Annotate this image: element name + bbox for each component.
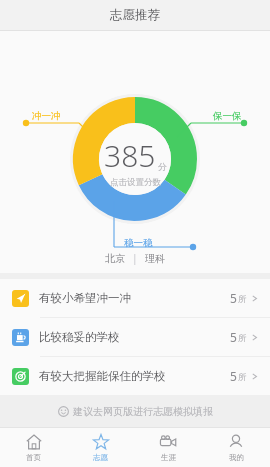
staticText: 有较小希望冲一冲 [39,291,131,305]
button[interactable]: 有较小希望冲一冲 [0,279,270,317]
button[interactable]: 我的 [202,428,270,467]
staticText: 北京 [105,252,125,265]
staticText: 点击设置分数 [110,177,161,188]
staticText: 5 [230,329,237,345]
staticText: 我的 [229,453,244,462]
staticText: 稳一稳 [124,237,153,249]
button[interactable]: 生涯 [134,428,202,467]
staticText: 理科 [145,252,165,265]
staticText: 比较稳妥的学校 [39,330,120,344]
staticText: 志愿推荐 [110,7,160,23]
staticText: 生涯 [161,453,176,462]
staticText: 385 [104,135,156,176]
button[interactable]: 首页 [0,428,67,467]
staticText: 所 [238,333,247,344]
staticText: 建议去网页版进行志愿模拟填报 [73,405,213,418]
staticText: 冲一冲 [32,110,61,122]
staticText: 5 [230,368,237,384]
button[interactable]: 385 [104,135,167,188]
button[interactable]: 志愿 [67,428,134,467]
staticText: 5 [230,290,237,306]
button[interactable]: 有较大把握能保住的学校 [0,357,270,395]
staticText: 首页 [26,453,41,462]
staticText: 保一保 [213,110,242,122]
staticText: 所 [238,294,247,305]
button[interactable]: 比较稳妥的学校 [0,318,270,356]
staticText: 有较大把握能保住的学校 [39,369,166,383]
staticText: 所 [238,372,247,383]
staticText: 分 [158,161,167,172]
staticText: 志愿 [93,453,108,462]
staticText: | [132,251,138,265]
